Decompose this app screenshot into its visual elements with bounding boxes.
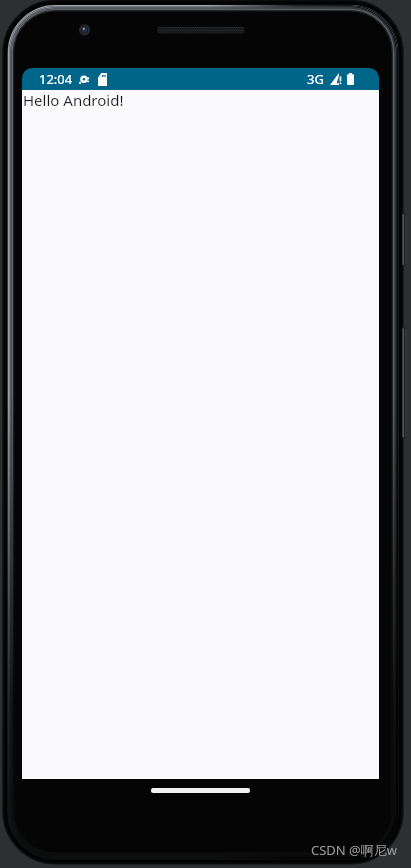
staticText: CSDN @啊尼w: [311, 841, 398, 859]
button[interactable]: Hello Android!: [22, 90, 379, 779]
staticText: 12:04: [39, 70, 73, 88]
staticText: 3G: [307, 70, 324, 88]
staticText: Hello Android!: [23, 90, 124, 110]
button[interactable]: Home: [151, 788, 250, 793]
